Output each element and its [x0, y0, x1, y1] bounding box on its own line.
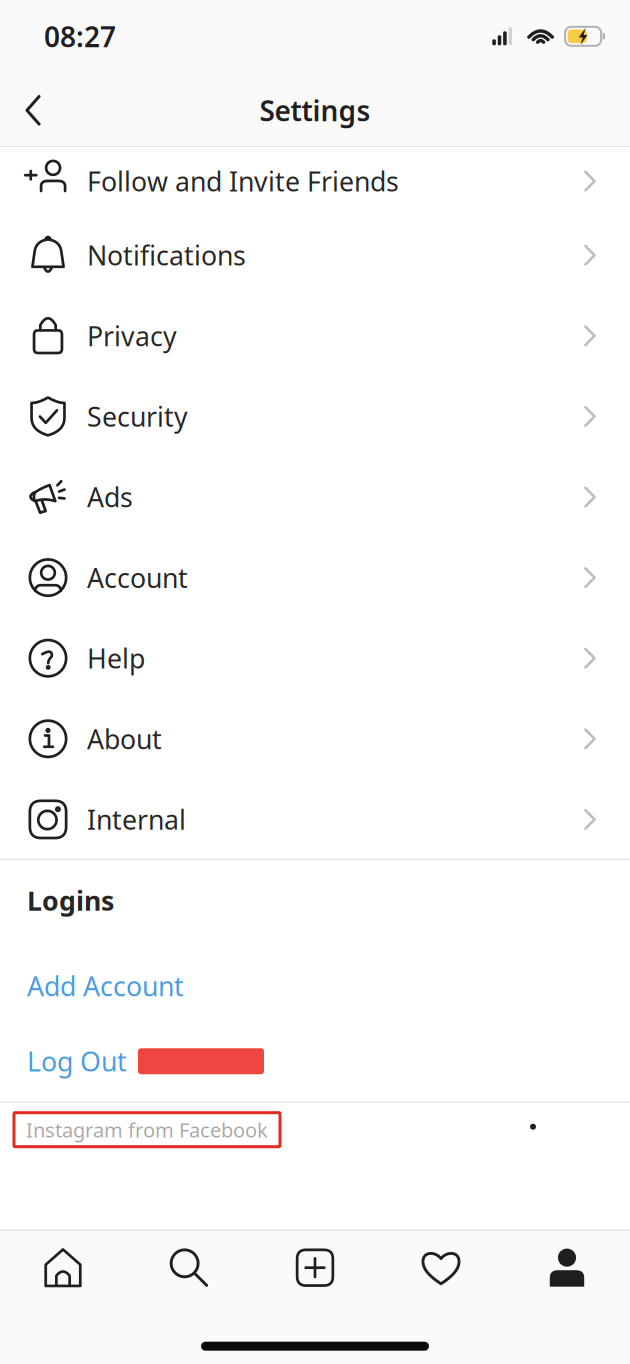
button[interactable]: Internal — [0, 779, 630, 860]
button[interactable]: Home — [0, 1230, 126, 1313]
button[interactable]: Account — [0, 537, 630, 618]
button[interactable]: Notifications — [0, 215, 630, 295]
staticText: 08:27 — [44, 18, 116, 55]
button[interactable]: Security — [0, 376, 630, 457]
staticText: Settings — [259, 92, 370, 129]
button[interactable]: Search — [126, 1230, 252, 1313]
staticText: Instagram from Facebook — [26, 1116, 268, 1143]
button[interactable]: Ads — [0, 457, 630, 537]
button[interactable]: Privacy — [0, 295, 630, 376]
staticText: Help — [87, 640, 145, 676]
button[interactable]: Add Account — [0, 918, 630, 1003]
button[interactable]: Follow and Invite Friends — [0, 147, 630, 215]
button[interactable]: Activity — [378, 1230, 504, 1313]
button[interactable]: Log Out — [0, 1003, 630, 1079]
staticText: Account — [87, 560, 188, 595]
staticText: Ads — [87, 479, 133, 515]
button[interactable]: Back — [5, 80, 61, 140]
staticText: Follow and Invite Friends — [87, 163, 399, 199]
staticText: Log Out — [27, 1043, 127, 1079]
button[interactable]: About — [0, 698, 630, 779]
staticText: Notifications — [87, 237, 246, 273]
staticText: Add Account — [27, 968, 184, 1003]
button[interactable]: Profile — [504, 1230, 630, 1313]
staticText: Security — [87, 399, 188, 434]
staticText: Logins — [27, 883, 114, 918]
staticText: Internal — [87, 802, 186, 837]
staticText: About — [87, 721, 162, 756]
staticText: Privacy — [87, 318, 177, 353]
button[interactable]: New Post — [252, 1230, 378, 1313]
button[interactable]: Help — [0, 618, 630, 698]
